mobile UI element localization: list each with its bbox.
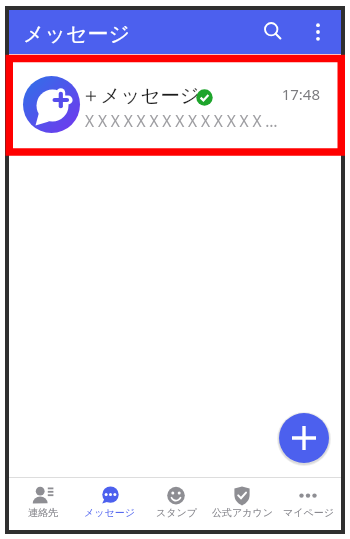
staticText: マイページ bbox=[283, 506, 334, 519]
button[interactable] bbox=[279, 413, 329, 463]
staticText: 17:48 bbox=[273, 84, 320, 104]
staticText: XXXXXXXXXXXXXX… bbox=[85, 110, 282, 131]
staticText: メッセージ bbox=[84, 506, 135, 519]
button[interactable]: ＋メッセージ bbox=[9, 54, 341, 146]
button[interactable]: 連絡先 bbox=[9, 478, 76, 530]
button[interactable]: マイページ bbox=[275, 478, 341, 530]
staticText: 公式アカウン bbox=[212, 506, 273, 519]
button[interactable]: メッセージ bbox=[76, 478, 143, 530]
button[interactable]: 公式アカウン bbox=[209, 478, 275, 530]
button[interactable] bbox=[295, 10, 341, 54]
button[interactable] bbox=[251, 10, 295, 54]
staticText: スタンプ bbox=[156, 506, 197, 519]
staticText: ＋メッセージ bbox=[81, 83, 200, 108]
staticText: 連絡先 bbox=[28, 506, 58, 519]
button[interactable]: スタンプ bbox=[143, 478, 209, 530]
staticText: メッセージ bbox=[23, 21, 130, 47]
